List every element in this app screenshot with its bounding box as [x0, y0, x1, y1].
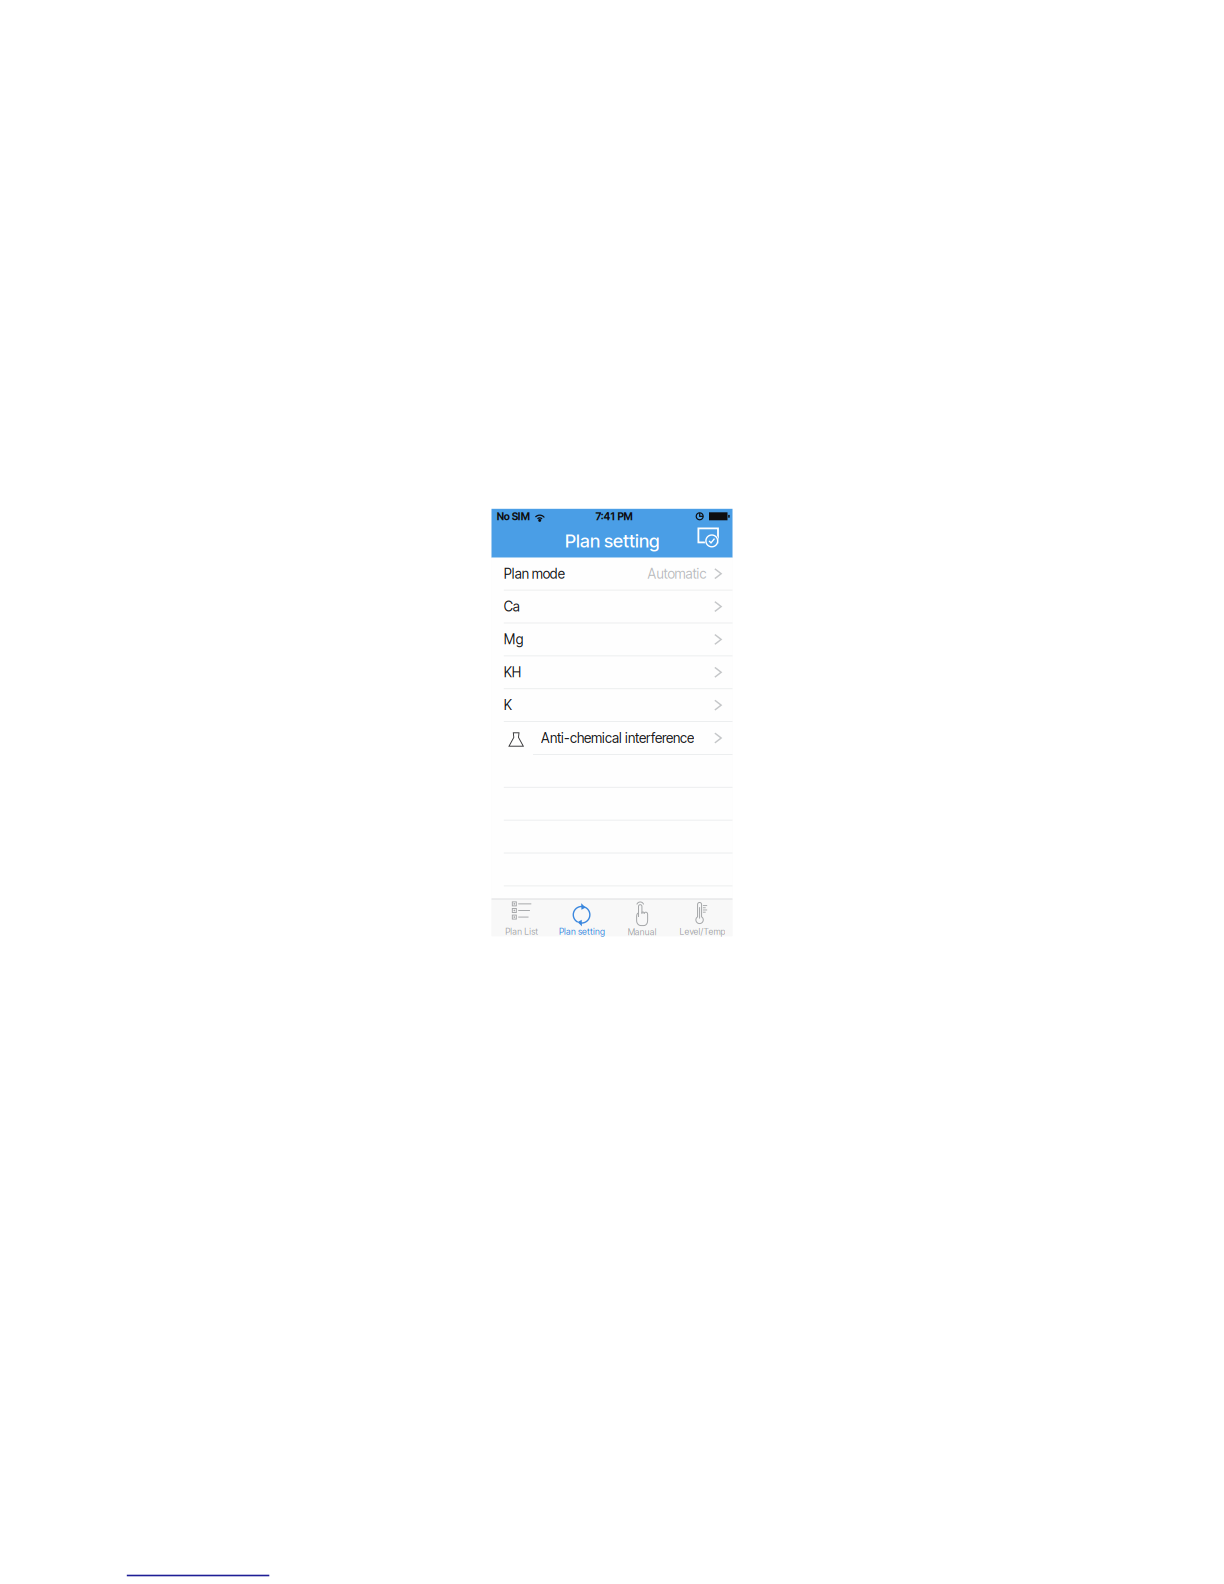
button[interactable]: Anti-chemical interference: [491, 722, 732, 754]
staticText: Anti-chemical interference: [541, 730, 694, 746]
staticText: No SIM: [497, 510, 530, 523]
staticText: 7:41: [595, 510, 614, 523]
staticText: Plan mode: [504, 565, 565, 582]
button[interactable]: Mg: [491, 623, 732, 655]
staticText: Automatic: [648, 565, 707, 582]
staticText: PM: [618, 510, 633, 523]
staticText: K: [504, 697, 512, 713]
button[interactable]: Plan mode: [491, 558, 732, 590]
button[interactable]: Manual: [612, 899, 672, 937]
staticText: Plan setting: [559, 926, 605, 937]
staticText: Plan List: [505, 926, 538, 937]
staticText: Plan setting: [565, 530, 659, 552]
button[interactable]: Plan setting: [552, 899, 612, 937]
staticText: Level/Temp: [679, 926, 725, 937]
button[interactable]: Level/Temp: [672, 899, 732, 937]
button[interactable]: Plan List: [491, 899, 552, 937]
button[interactable]: KH: [491, 656, 732, 688]
staticText: Mg: [504, 631, 524, 648]
button[interactable]: K: [491, 689, 732, 721]
staticText: KH: [504, 664, 521, 681]
staticText: Manual: [628, 927, 657, 937]
button[interactable]: Save plan: [697, 524, 732, 558]
button[interactable]: Ca: [491, 591, 732, 623]
staticText: Ca: [504, 598, 520, 615]
